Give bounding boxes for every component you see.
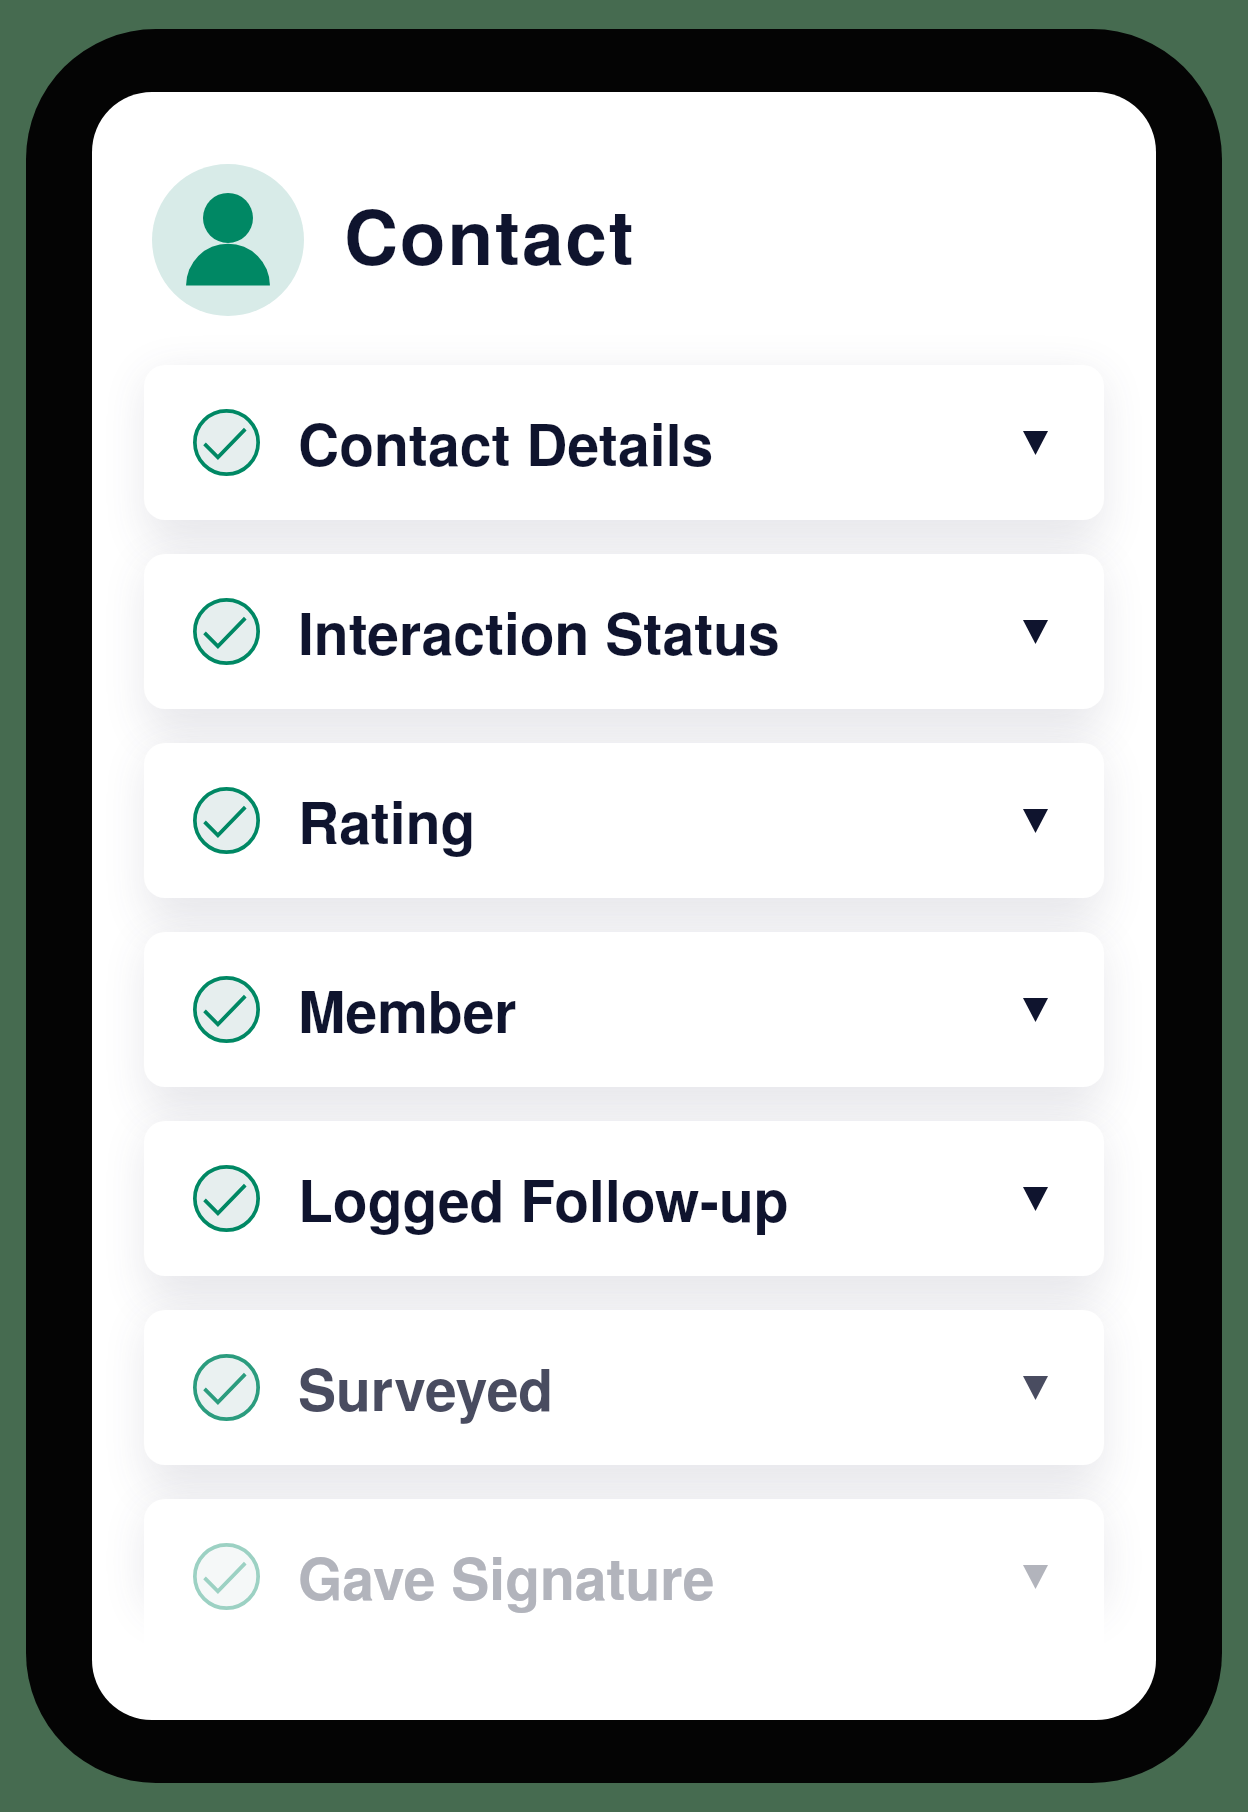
button[interactable]: Rating bbox=[144, 743, 1104, 898]
button[interactable]: Expand Surveyed bbox=[1023, 1376, 1048, 1400]
button[interactable]: Member bbox=[144, 932, 1104, 1087]
button[interactable]: Contact Details bbox=[144, 365, 1104, 520]
staticText: Member bbox=[298, 969, 517, 1051]
staticText: Logged Follow-up bbox=[298, 1158, 789, 1240]
button[interactable]: Expand Member bbox=[1023, 998, 1048, 1022]
staticText: Surveyed bbox=[298, 1347, 554, 1429]
staticText: Gave Signature bbox=[298, 1536, 715, 1618]
button[interactable]: Contact avatar bbox=[152, 164, 304, 316]
button[interactable]: Surveyed bbox=[144, 1310, 1104, 1465]
staticText: Interaction Status bbox=[298, 591, 780, 673]
button[interactable]: Interaction Status bbox=[144, 554, 1104, 709]
button[interactable]: Gave Signature bbox=[144, 1499, 1104, 1720]
staticText: Contact bbox=[344, 181, 636, 288]
button[interactable]: Expand Logged Follow-up bbox=[1023, 1187, 1048, 1211]
staticText: Contact Details bbox=[298, 402, 714, 484]
button[interactable]: Logged Follow-up bbox=[144, 1121, 1104, 1276]
button[interactable]: Expand Gave Signature bbox=[1023, 1565, 1048, 1589]
button[interactable]: Expand Rating bbox=[1023, 809, 1048, 833]
button[interactable]: Expand Contact Details bbox=[1023, 431, 1048, 455]
button[interactable]: Expand Interaction Status bbox=[1023, 620, 1048, 644]
staticText: Rating bbox=[298, 780, 476, 862]
